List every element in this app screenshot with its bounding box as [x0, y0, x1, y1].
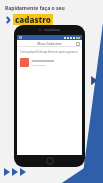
- staticText: Com qual perfil deseja fornecer para o g…: [20, 50, 78, 54]
- staticText: Meus Cadastros: [37, 42, 62, 46]
- button[interactable]: [20, 58, 79, 67]
- button[interactable]: Menu: [76, 42, 80, 46]
- staticText: Rapidamente faça o seu: [5, 5, 65, 12]
- button[interactable]: Meus Cadastros: [17, 40, 82, 47]
- staticText: cadastro: [15, 14, 51, 25]
